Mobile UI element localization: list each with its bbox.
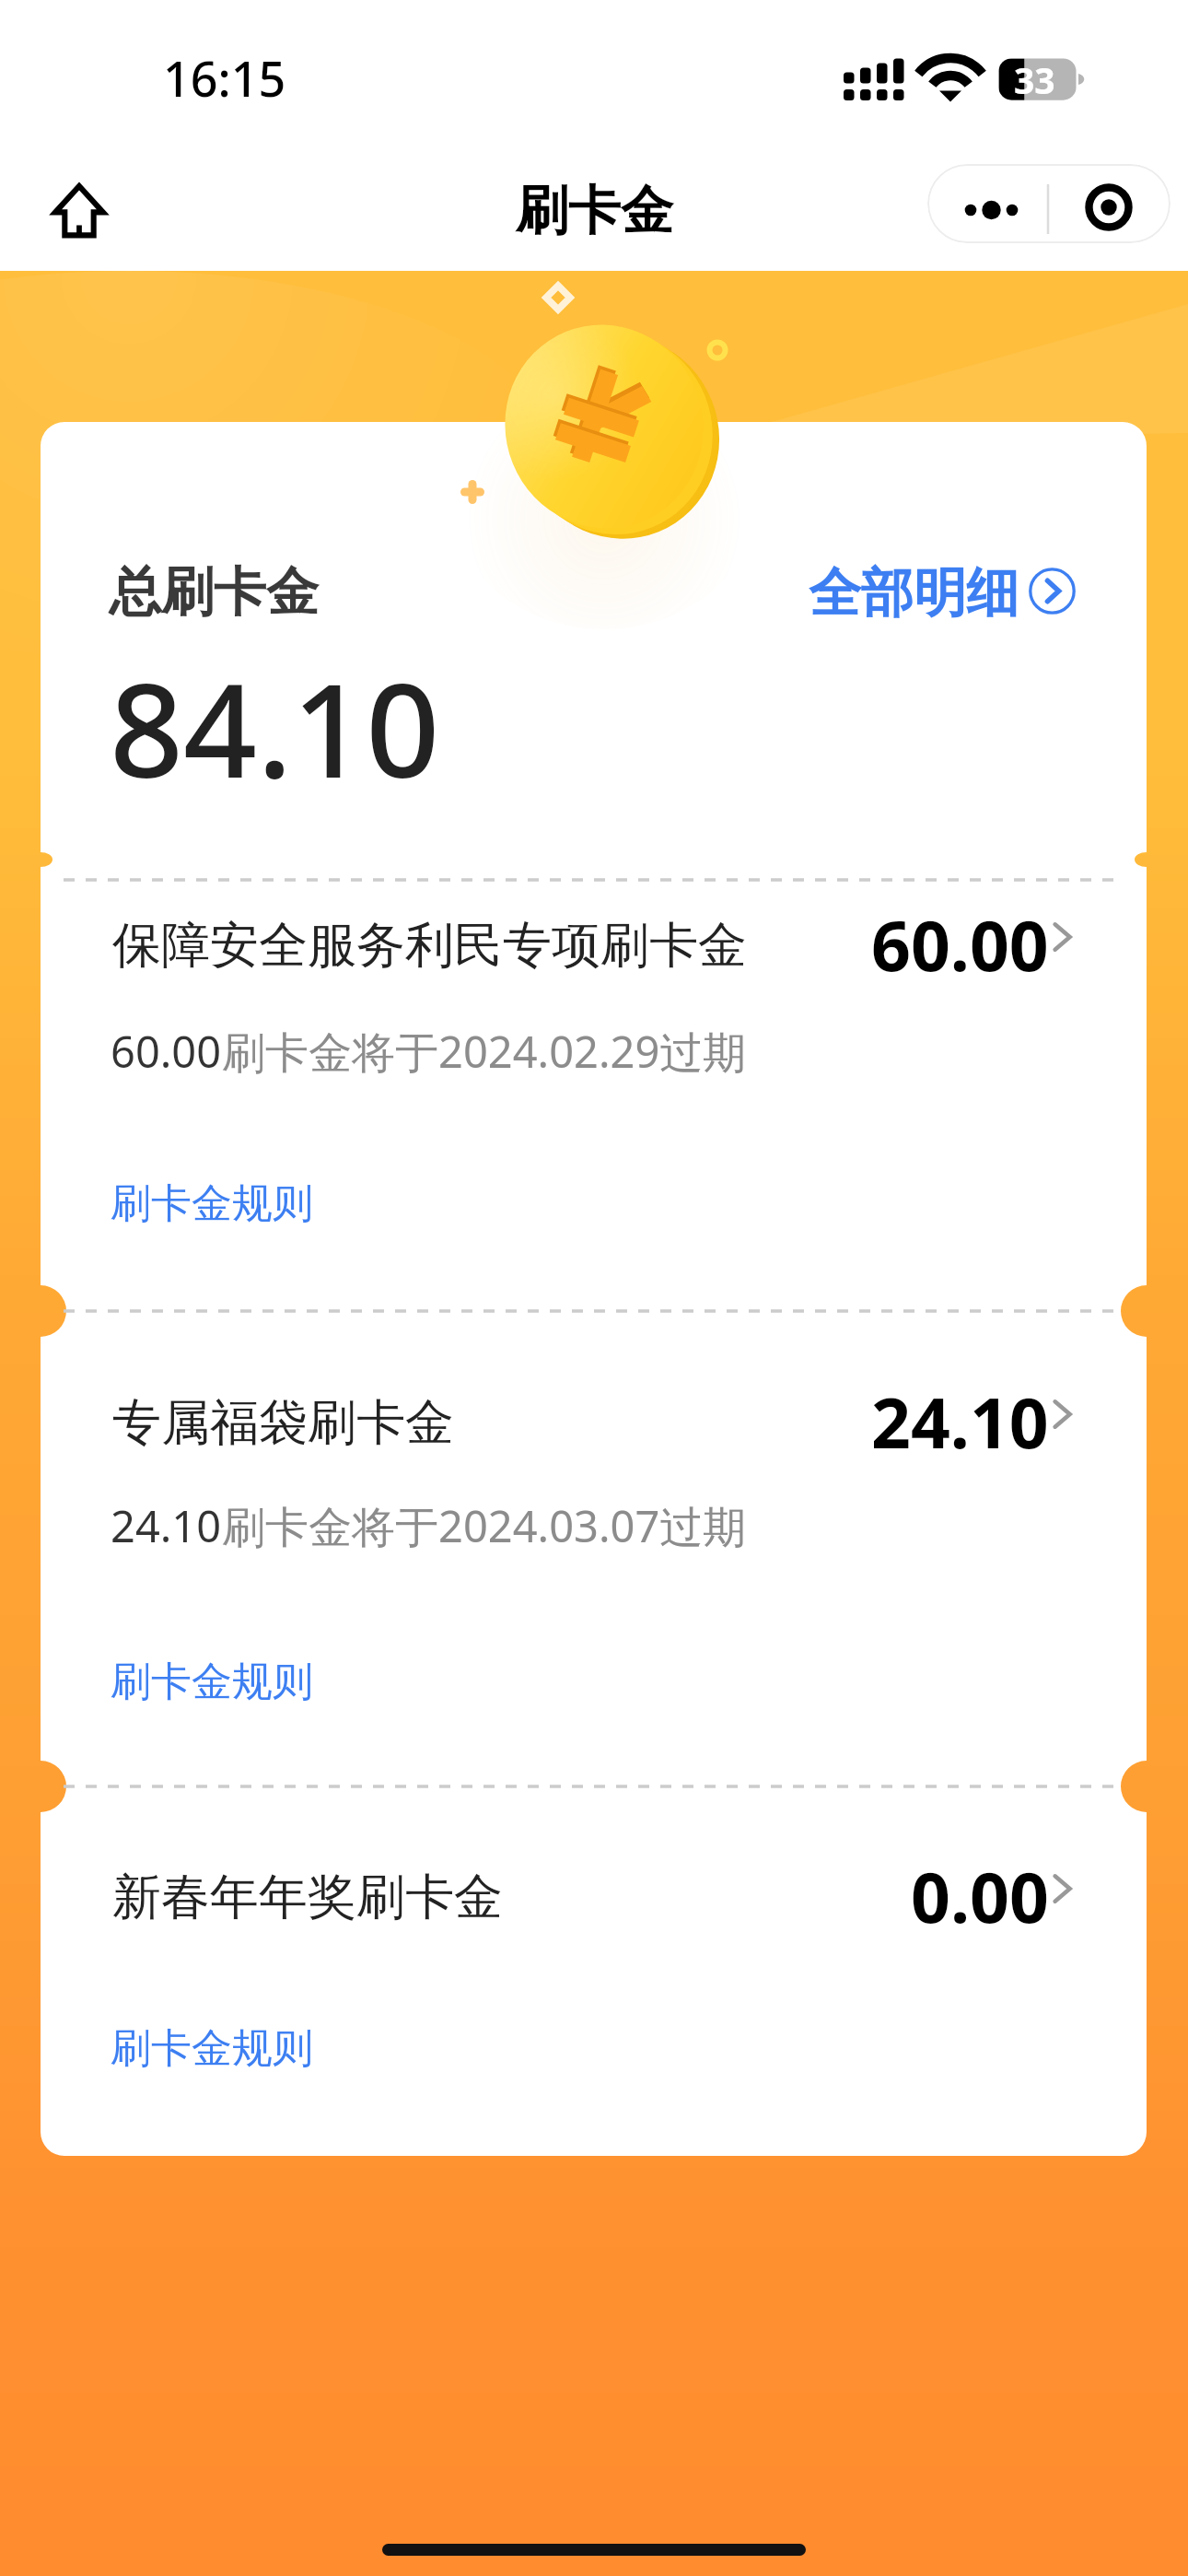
staticText: 16:15 [163,45,286,111]
staticText: 33 [1014,55,1055,104]
staticText: 刷卡金规则 [111,2023,313,2074]
staticText: 刷卡金 [516,178,673,244]
staticText: 60.00 [871,897,1049,986]
button[interactable]: More options [927,164,1048,243]
staticText: 专属福袋刷卡金 [112,1392,454,1454]
button[interactable]: Close mini program [1048,164,1171,243]
staticText: 60.00 [111,1022,222,1081]
staticText: 刷卡金规则 [111,1178,313,1229]
staticText: 新春年年奖刷卡金 [112,1867,503,1928]
staticText: 24.10 [871,1375,1049,1463]
button[interactable]: Home [49,177,108,236]
staticText: 全部明细 [809,560,1019,626]
staticText: 刷卡金将于2024.03.07过期 [222,1496,747,1555]
staticText: 刷卡金规则 [111,1657,313,1707]
staticText: 保障安全服务利民专项刷卡金 [112,915,747,977]
staticText: 0.00 [911,1849,1049,1938]
button[interactable]: 刷卡金规则 [111,2023,313,2074]
button[interactable]: 全部明细 [809,560,1076,626]
staticText: 总刷卡金 [109,559,319,626]
button[interactable]: 刷卡金规则 [111,1178,313,1229]
staticText: 24.10 [111,1496,222,1555]
button[interactable]: 刷卡金规则 [111,1657,313,1707]
staticText: 刷卡金将于2024.02.29过期 [222,1022,747,1081]
button[interactable]: 专属福袋刷卡金 [41,1378,1147,1467]
button[interactable]: 新春年年奖刷卡金 [41,1853,1147,1941]
staticText: 84.10 [110,639,440,815]
button[interactable]: 保障安全服务利民专项刷卡金 [41,901,1147,989]
